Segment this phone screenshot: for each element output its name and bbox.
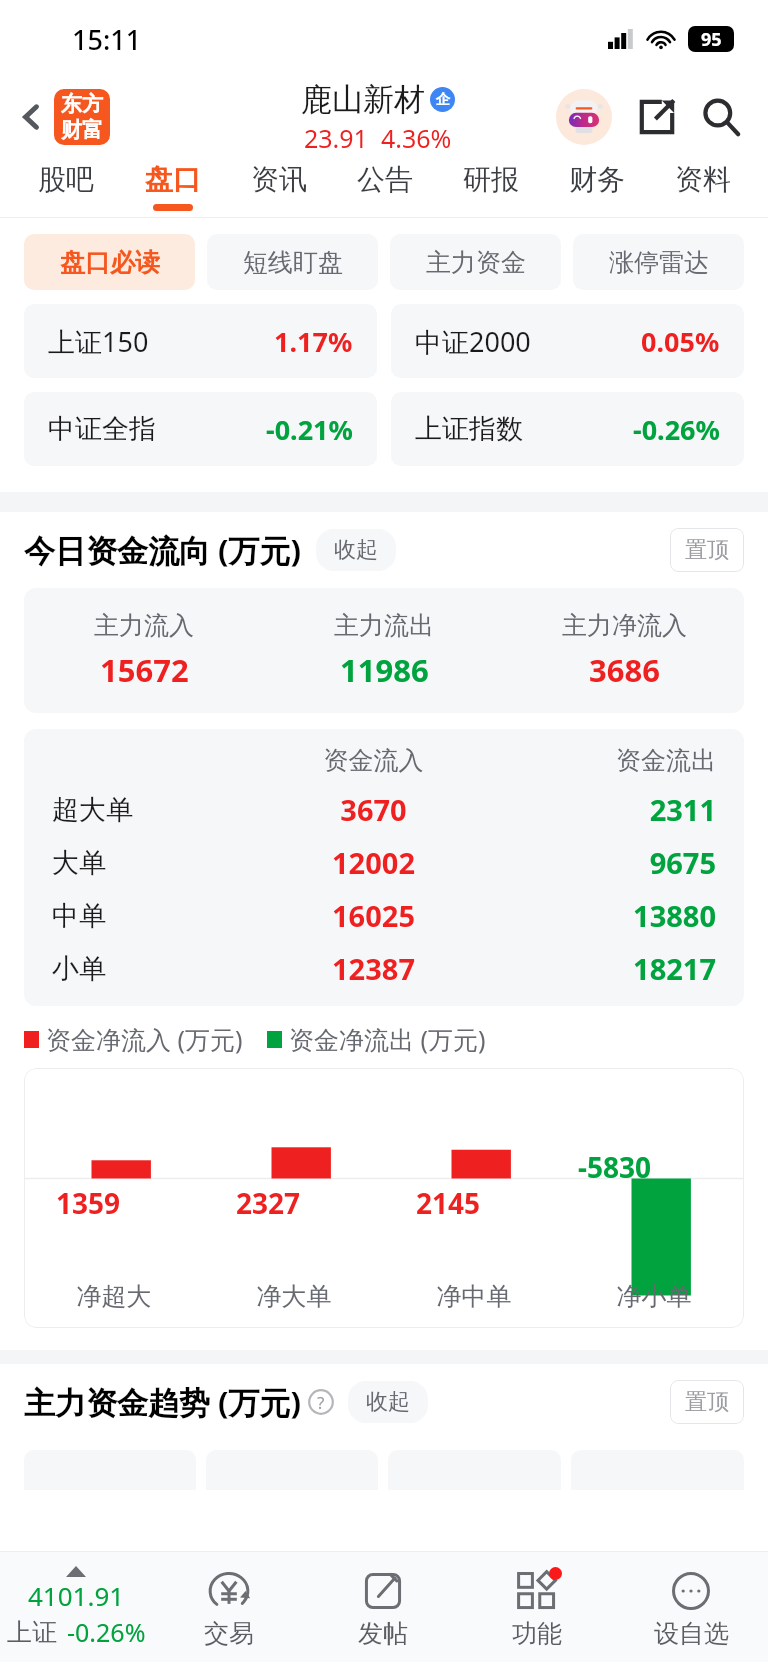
staticText: 净大单: [204, 1281, 384, 1312]
staticText: 上证: [7, 1617, 57, 1648]
staticText: 资金净流出 (万元): [289, 1022, 486, 1056]
staticText: 12387: [252, 949, 495, 988]
staticText: 4101.91: [28, 1578, 125, 1613]
button[interactable]: 资料: [650, 156, 756, 218]
staticText: 2311: [495, 790, 716, 829]
staticText: 资讯: [251, 162, 307, 197]
staticText: 资金流入: [252, 745, 495, 776]
staticText: 今日资金流向 (万元): [24, 529, 302, 571]
button[interactable]: 盘口: [119, 156, 226, 218]
staticText: 盘口必读: [60, 247, 160, 278]
button[interactable]: Search: [698, 94, 744, 140]
staticText: 1.17%: [274, 323, 353, 360]
button[interactable]: AI assistant: [556, 89, 612, 145]
staticText: ?: [317, 1391, 325, 1414]
staticText: 主力流出: [334, 610, 434, 641]
staticText: 置顶: [685, 536, 729, 564]
staticText: 23.91 4.36%: [304, 121, 452, 155]
staticText: 收起: [366, 1388, 410, 1416]
staticText: 中证2000: [415, 323, 531, 360]
button[interactable]: 资讯: [226, 156, 332, 218]
button[interactable]: 主力资金: [390, 234, 561, 290]
staticText: 股吧: [38, 162, 94, 197]
staticText: 18217: [495, 949, 716, 988]
staticText: 15:11: [72, 21, 142, 58]
staticText: 设自选: [654, 1618, 729, 1649]
button[interactable]: 主力流入: [24, 588, 744, 713]
staticText: 资金流出: [495, 745, 716, 776]
button[interactable]: 置顶: [670, 528, 744, 572]
button[interactable]: 交易: [152, 1565, 306, 1649]
button[interactable]: 短线盯盘: [207, 234, 378, 290]
staticText: 9675: [495, 843, 716, 882]
staticText: 12002: [252, 843, 495, 882]
staticText: 净中单: [384, 1281, 564, 1312]
staticText: 16025: [252, 896, 495, 935]
staticText: 小单: [52, 952, 252, 986]
button[interactable]: 公告: [332, 156, 438, 218]
staticText: 财务: [569, 162, 625, 197]
button[interactable]: 涨停雷达: [573, 234, 744, 290]
staticText: 13880: [495, 896, 716, 935]
button[interactable]: 上证指数: [391, 392, 744, 466]
button[interactable]: 中单: [24, 896, 744, 935]
staticText: 公告: [357, 162, 413, 197]
button[interactable]: 大单: [24, 843, 744, 882]
staticText: 盘口: [145, 162, 201, 197]
staticText: 15672: [100, 649, 189, 691]
staticText: 短线盯盘: [243, 247, 343, 278]
staticText: 研报: [463, 162, 519, 197]
staticText: 2145: [416, 1184, 481, 1222]
button[interactable]: 置顶: [670, 1380, 744, 1424]
staticText: 大单: [52, 846, 252, 880]
staticText: 主力净流入: [562, 610, 687, 641]
button[interactable]: Help: [308, 1389, 334, 1415]
staticText: 东方: [61, 91, 103, 117]
button[interactable]: 功能: [460, 1565, 614, 1649]
button[interactable]: 1359: [24, 1068, 744, 1328]
button[interactable]: 收起: [348, 1381, 428, 1423]
staticText: 2327: [236, 1184, 301, 1222]
button[interactable]: 中证2000: [391, 304, 744, 378]
button[interactable]: 财务: [544, 156, 650, 218]
staticText: 3686: [589, 649, 660, 691]
staticText: 资料: [675, 162, 731, 197]
staticText: -0.21%: [266, 411, 353, 448]
staticText: 主力资金: [426, 247, 526, 278]
staticText: 11986: [340, 649, 429, 691]
staticText: 中单: [52, 899, 252, 933]
staticText: 发帖: [358, 1618, 408, 1649]
button[interactable]: 中证全指: [24, 392, 377, 466]
staticText: 企: [436, 91, 450, 109]
staticText: 交易: [204, 1618, 254, 1649]
button[interactable]: 设自选: [614, 1565, 768, 1649]
staticText: 鹿山新材: [301, 80, 425, 119]
button[interactable]: 小单: [24, 949, 744, 988]
button[interactable]: 盘口必读: [24, 234, 195, 290]
staticText: 财富: [61, 117, 103, 143]
staticText: 上证150: [48, 323, 149, 360]
staticText: 0.05%: [641, 323, 720, 360]
staticText: 涨停雷达: [609, 247, 709, 278]
staticText: 收起: [334, 536, 378, 564]
button[interactable]: 超大单: [24, 790, 744, 829]
staticText: 95: [701, 27, 722, 52]
staticText: 净超大: [24, 1281, 204, 1312]
button[interactable]: 上证150: [24, 304, 377, 378]
button[interactable]: 4101.91: [0, 1566, 152, 1649]
button[interactable]: 研报: [438, 156, 544, 218]
staticText: -0.26%: [67, 1615, 146, 1649]
staticText: 净小单: [564, 1281, 744, 1312]
button[interactable]: Share: [634, 94, 680, 140]
staticText: -5830: [578, 1148, 652, 1186]
button[interactable]: 收起: [316, 529, 396, 571]
button[interactable]: 发帖: [306, 1565, 460, 1649]
staticText: 超大单: [52, 793, 252, 827]
button[interactable]: Back: [14, 89, 110, 145]
button[interactable]: 股吧: [12, 156, 119, 218]
staticText: 1359: [56, 1184, 121, 1222]
